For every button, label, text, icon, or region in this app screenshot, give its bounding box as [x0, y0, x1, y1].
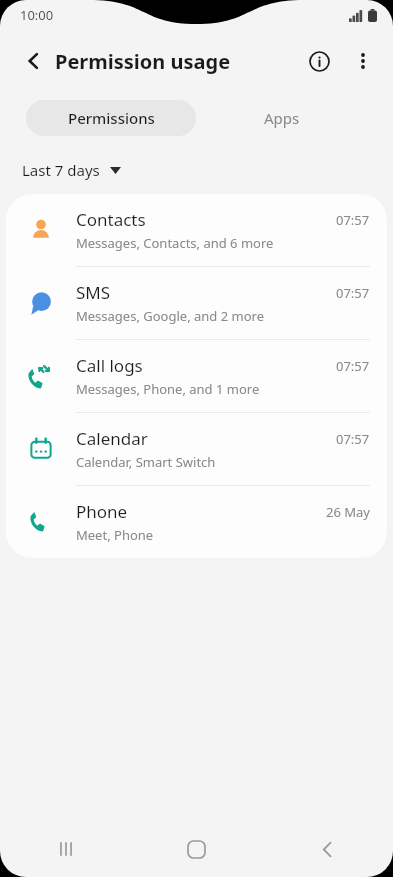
- staticText: Contacts: [76, 208, 146, 231]
- staticText: 07:57: [336, 430, 370, 448]
- staticText: 07:57: [336, 284, 370, 302]
- button[interactable]: Permissions: [26, 100, 196, 136]
- button[interactable]: Contacts: [6, 194, 387, 266]
- staticText: Call logs: [76, 354, 143, 377]
- button[interactable]: More options: [341, 39, 385, 83]
- staticText: 26 May: [326, 503, 370, 521]
- button[interactable]: Back: [12, 39, 56, 83]
- staticText: Messages, Google, and 2 more: [76, 307, 265, 325]
- staticText: Apps: [264, 108, 300, 128]
- staticText: Calendar: [76, 427, 148, 450]
- button[interactable]: Recent apps: [0, 821, 131, 877]
- staticText: Permission usage: [55, 48, 231, 75]
- staticText: Messages, Contacts, and 6 more: [76, 234, 274, 252]
- staticText: Permissions: [68, 108, 155, 128]
- staticText: 07:57: [336, 357, 370, 375]
- staticText: SMS: [76, 281, 111, 304]
- staticText: 07:57: [336, 211, 370, 229]
- button[interactable]: Call logs: [6, 340, 387, 412]
- button[interactable]: Back: [262, 821, 393, 877]
- button[interactable]: Apps: [196, 100, 367, 136]
- staticText: Phone: [76, 500, 128, 523]
- button[interactable]: Phone: [6, 486, 387, 558]
- button[interactable]: Last 7 days: [18, 156, 125, 184]
- staticText: Last 7 days: [22, 160, 100, 180]
- staticText: Messages, Phone, and 1 more: [76, 380, 260, 398]
- staticText: 10:00: [20, 6, 54, 24]
- staticText: Calendar, Smart Switch: [76, 453, 216, 471]
- button[interactable]: SMS: [6, 267, 387, 339]
- button[interactable]: Home: [131, 821, 262, 877]
- button[interactable]: Information: [297, 39, 341, 83]
- staticText: Meet, Phone: [76, 526, 154, 544]
- button[interactable]: Calendar: [6, 413, 387, 485]
